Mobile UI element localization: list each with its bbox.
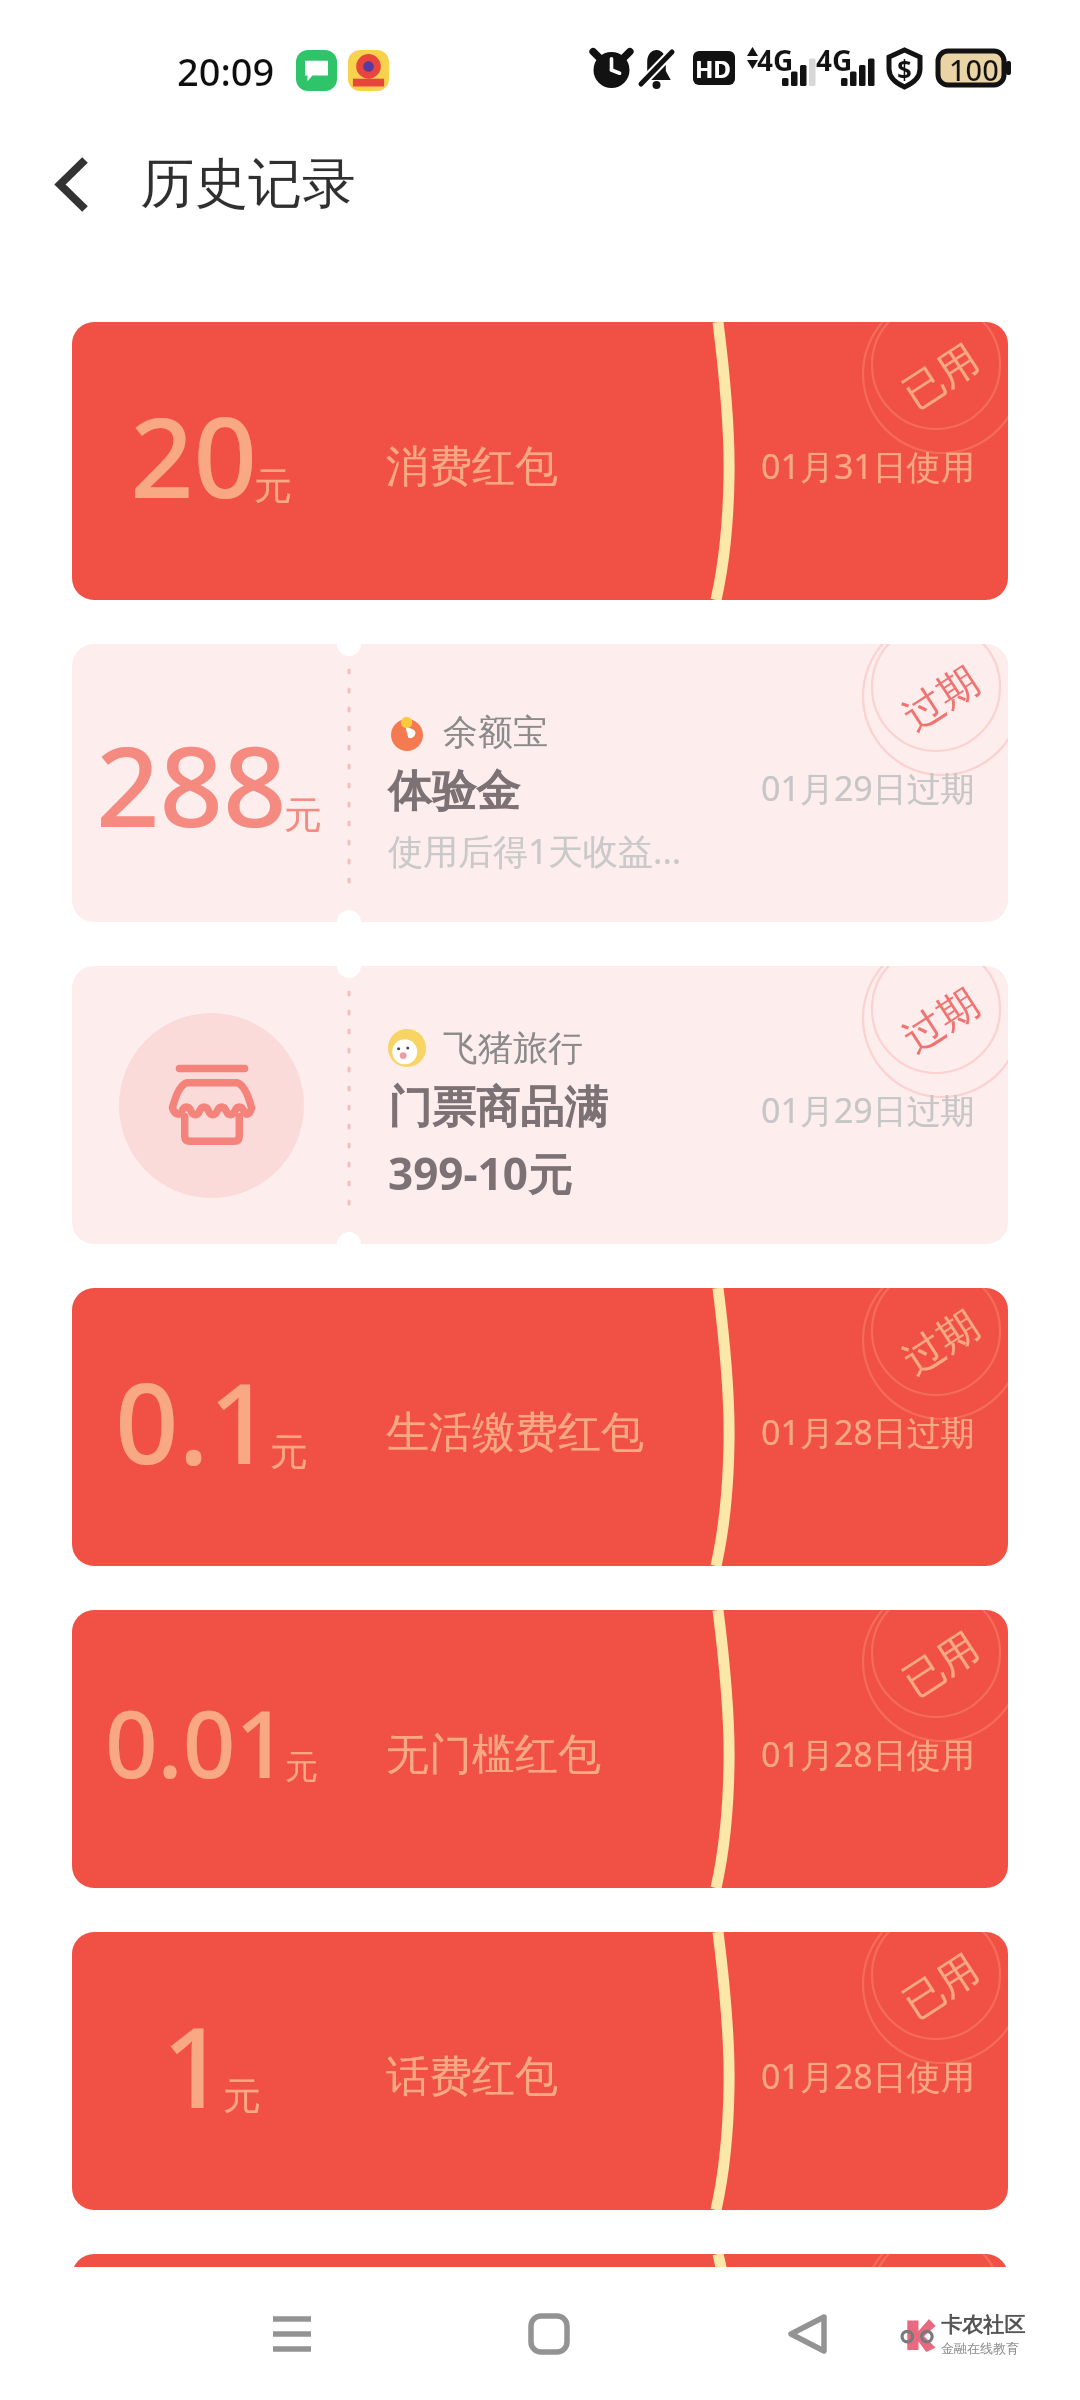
- staticText: 过期: [894, 1299, 988, 1385]
- staticText: 01月29日过期: [761, 765, 975, 811]
- button[interactable]: Back: [30, 142, 114, 226]
- staticText: 399-10元: [388, 1143, 572, 1203]
- staticText: 飞猪旅行: [443, 1026, 583, 1070]
- staticText: 01月28日使用: [761, 1731, 975, 1777]
- staticText: 01月27日使用: [761, 2309, 975, 2355]
- staticText: 过期: [894, 655, 988, 741]
- staticText: 已用: [894, 2263, 988, 2349]
- staticText: 已用: [894, 333, 988, 419]
- staticText: 5: [162, 2254, 226, 2393]
- staticText: 01月28日使用: [761, 2053, 975, 2099]
- staticText: 元: [284, 791, 322, 839]
- staticText: 体验金: [388, 764, 520, 819]
- button[interactable]: 已用: [72, 1610, 1008, 1888]
- staticText: 已用: [894, 1621, 988, 1707]
- staticText: 288: [96, 708, 287, 859]
- staticText: 生活缴费红包: [386, 1406, 644, 1460]
- button[interactable]: 过期: [72, 1288, 1008, 1566]
- button[interactable]: Recent apps: [251, 2293, 333, 2375]
- staticText: 历史记录: [140, 150, 356, 218]
- staticText: 元: [285, 1746, 318, 1788]
- staticText: $: [897, 52, 912, 87]
- staticText: 话费红包: [386, 2050, 558, 2104]
- button[interactable]: 过期: [72, 644, 1008, 922]
- staticText: 01月29日过期: [761, 1087, 975, 1133]
- button[interactable]: 已用: [72, 1932, 1008, 2210]
- staticText: 余额宝: [443, 710, 548, 754]
- staticText: 20: [130, 379, 257, 530]
- staticText: 4G: [757, 41, 794, 79]
- staticText: 金融在线教育: [941, 2340, 1019, 2356]
- staticText: 无门槛红包: [386, 1728, 601, 1782]
- staticText: 0.01: [105, 1680, 288, 1805]
- staticText: 20:09: [177, 45, 275, 97]
- staticText: 元: [254, 462, 292, 510]
- staticText: 已用: [894, 1943, 988, 2029]
- button[interactable]: 已用: [72, 322, 1008, 600]
- staticText: 0.1: [115, 1345, 273, 1496]
- staticText: 元: [270, 1428, 308, 1476]
- staticText: 消费红包: [386, 440, 558, 494]
- staticText: 01月28日过期: [761, 1409, 975, 1455]
- button[interactable]: Back: [766, 2293, 848, 2375]
- staticText: 100: [949, 50, 999, 89]
- button[interactable]: 已用: [72, 2254, 1008, 2400]
- button[interactable]: 过期: [72, 966, 1008, 1244]
- staticText: HD: [695, 52, 731, 85]
- staticText: 元: [223, 2072, 261, 2120]
- staticText: 使用后得1天收益...: [388, 827, 682, 875]
- staticText: 卡农社区: [941, 2312, 1025, 2338]
- staticText: 门票商品满: [388, 1080, 608, 1135]
- staticText: 4G: [816, 41, 853, 79]
- staticText: 过期: [894, 977, 988, 1063]
- staticText: 1: [162, 1989, 226, 2140]
- staticText: 01月31日使用: [761, 443, 975, 489]
- button[interactable]: Home: [508, 2293, 590, 2375]
